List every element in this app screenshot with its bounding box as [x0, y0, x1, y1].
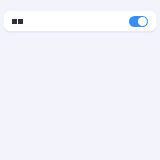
button[interactable]: Toggle setting, on — [129, 16, 148, 27]
button[interactable]: Toggle setting, on — [4, 11, 156, 31]
